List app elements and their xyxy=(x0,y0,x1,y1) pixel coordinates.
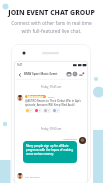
staticText: 2 xyxy=(30,109,32,112)
staticText: BMW Sport Music Event xyxy=(24,72,58,76)
staticText: 2 xyxy=(39,109,41,112)
button[interactable]: Calendar xyxy=(66,71,72,77)
staticText: 2 xyxy=(57,109,59,112)
button[interactable]: Reaction xyxy=(25,108,33,113)
button[interactable]: Reaction xyxy=(34,108,42,113)
staticText: Will be done xyxy=(25,175,40,178)
staticText: Friday, 09:45 am xyxy=(14,85,88,89)
staticText: Administrator xyxy=(27,95,44,98)
staticText: 9:41 xyxy=(17,63,23,67)
button[interactable]: Back xyxy=(17,72,22,77)
staticText: Connect with other fans in real time wit… xyxy=(0,20,103,34)
staticText: @ASTRO Reacts to Their Debut Win in Aja'… xyxy=(25,99,84,107)
staticText: Sport xyxy=(48,95,55,98)
button[interactable]: Settings xyxy=(72,71,78,77)
staticText: JOIN EVENT CHAT GROUP xyxy=(0,8,103,17)
staticText: 2 xyxy=(48,109,50,112)
staticText: Friday, 09:50 am xyxy=(14,127,88,131)
button[interactable]: Reaction xyxy=(43,108,51,113)
staticText: Many people sign up for affiliate progra… xyxy=(26,144,74,156)
button[interactable]: More options xyxy=(78,71,84,77)
staticText: Adam Bulky xyxy=(63,137,77,140)
button[interactable]: Reaction xyxy=(52,108,60,113)
